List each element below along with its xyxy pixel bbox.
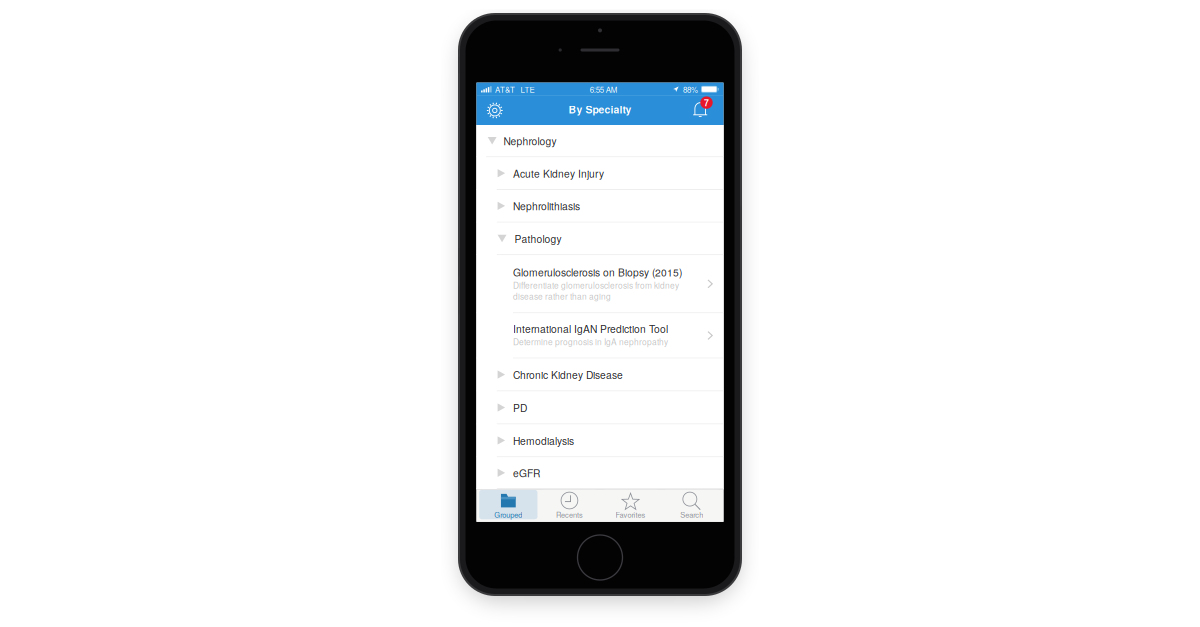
staticText: LTE bbox=[521, 84, 535, 95]
staticText: Favorites bbox=[615, 509, 645, 520]
button[interactable]: Grouped bbox=[479, 490, 537, 519]
button[interactable]: Nephrolithiasis bbox=[476, 190, 723, 223]
button[interactable]: Settings bbox=[476, 96, 516, 125]
staticText: Determine prognosis in IgA nephropathy bbox=[513, 335, 668, 347]
button[interactable]: PD bbox=[476, 391, 723, 424]
staticText: Grouped bbox=[494, 509, 522, 520]
staticText: 6:55 AM bbox=[590, 84, 618, 95]
button[interactable]: Favorites bbox=[601, 490, 660, 519]
staticText: Nephrology bbox=[504, 133, 557, 148]
staticText: 88% bbox=[683, 84, 698, 95]
staticText: PD bbox=[513, 400, 527, 415]
button[interactable]: Notifications bbox=[683, 96, 723, 125]
button[interactable]: Nephrology bbox=[476, 125, 723, 157]
staticText: Hemodialysis bbox=[513, 433, 574, 448]
button[interactable]: Glomerulosclerosis on Biopsy (2015) bbox=[476, 255, 723, 313]
button[interactable]: Pathology bbox=[476, 223, 723, 255]
staticText: Pathology bbox=[514, 231, 561, 246]
button[interactable]: Hemodialysis bbox=[476, 424, 723, 457]
staticText: AT&T bbox=[495, 84, 515, 95]
button[interactable]: Chronic Kidney Disease bbox=[476, 358, 723, 391]
button[interactable]: eGFR bbox=[476, 457, 723, 489]
button[interactable]: Search bbox=[662, 490, 721, 519]
staticText: Differentiate glomerulosclerosis from ki… bbox=[513, 279, 679, 291]
button[interactable]: Recents bbox=[540, 490, 599, 519]
staticText: Chronic Kidney Disease bbox=[513, 367, 623, 382]
staticText: eGFR bbox=[513, 465, 540, 480]
staticText: Acute Kidney Injury bbox=[513, 166, 604, 180]
button[interactable]: Acute Kidney Injury bbox=[476, 157, 723, 190]
staticText: International IgAN Prediction Tool bbox=[513, 321, 668, 336]
staticText: Recents bbox=[556, 509, 583, 520]
staticText: Nephrolithiasis bbox=[513, 198, 580, 213]
staticText: By Specialty bbox=[568, 102, 631, 117]
staticText: disease rather than aging bbox=[513, 290, 611, 302]
staticText: Search bbox=[680, 509, 703, 520]
staticText: Glomerulosclerosis on Biopsy (2015) bbox=[513, 265, 682, 279]
button[interactable]: International IgAN Prediction Tool bbox=[476, 313, 723, 358]
staticText: 7 bbox=[704, 96, 709, 109]
